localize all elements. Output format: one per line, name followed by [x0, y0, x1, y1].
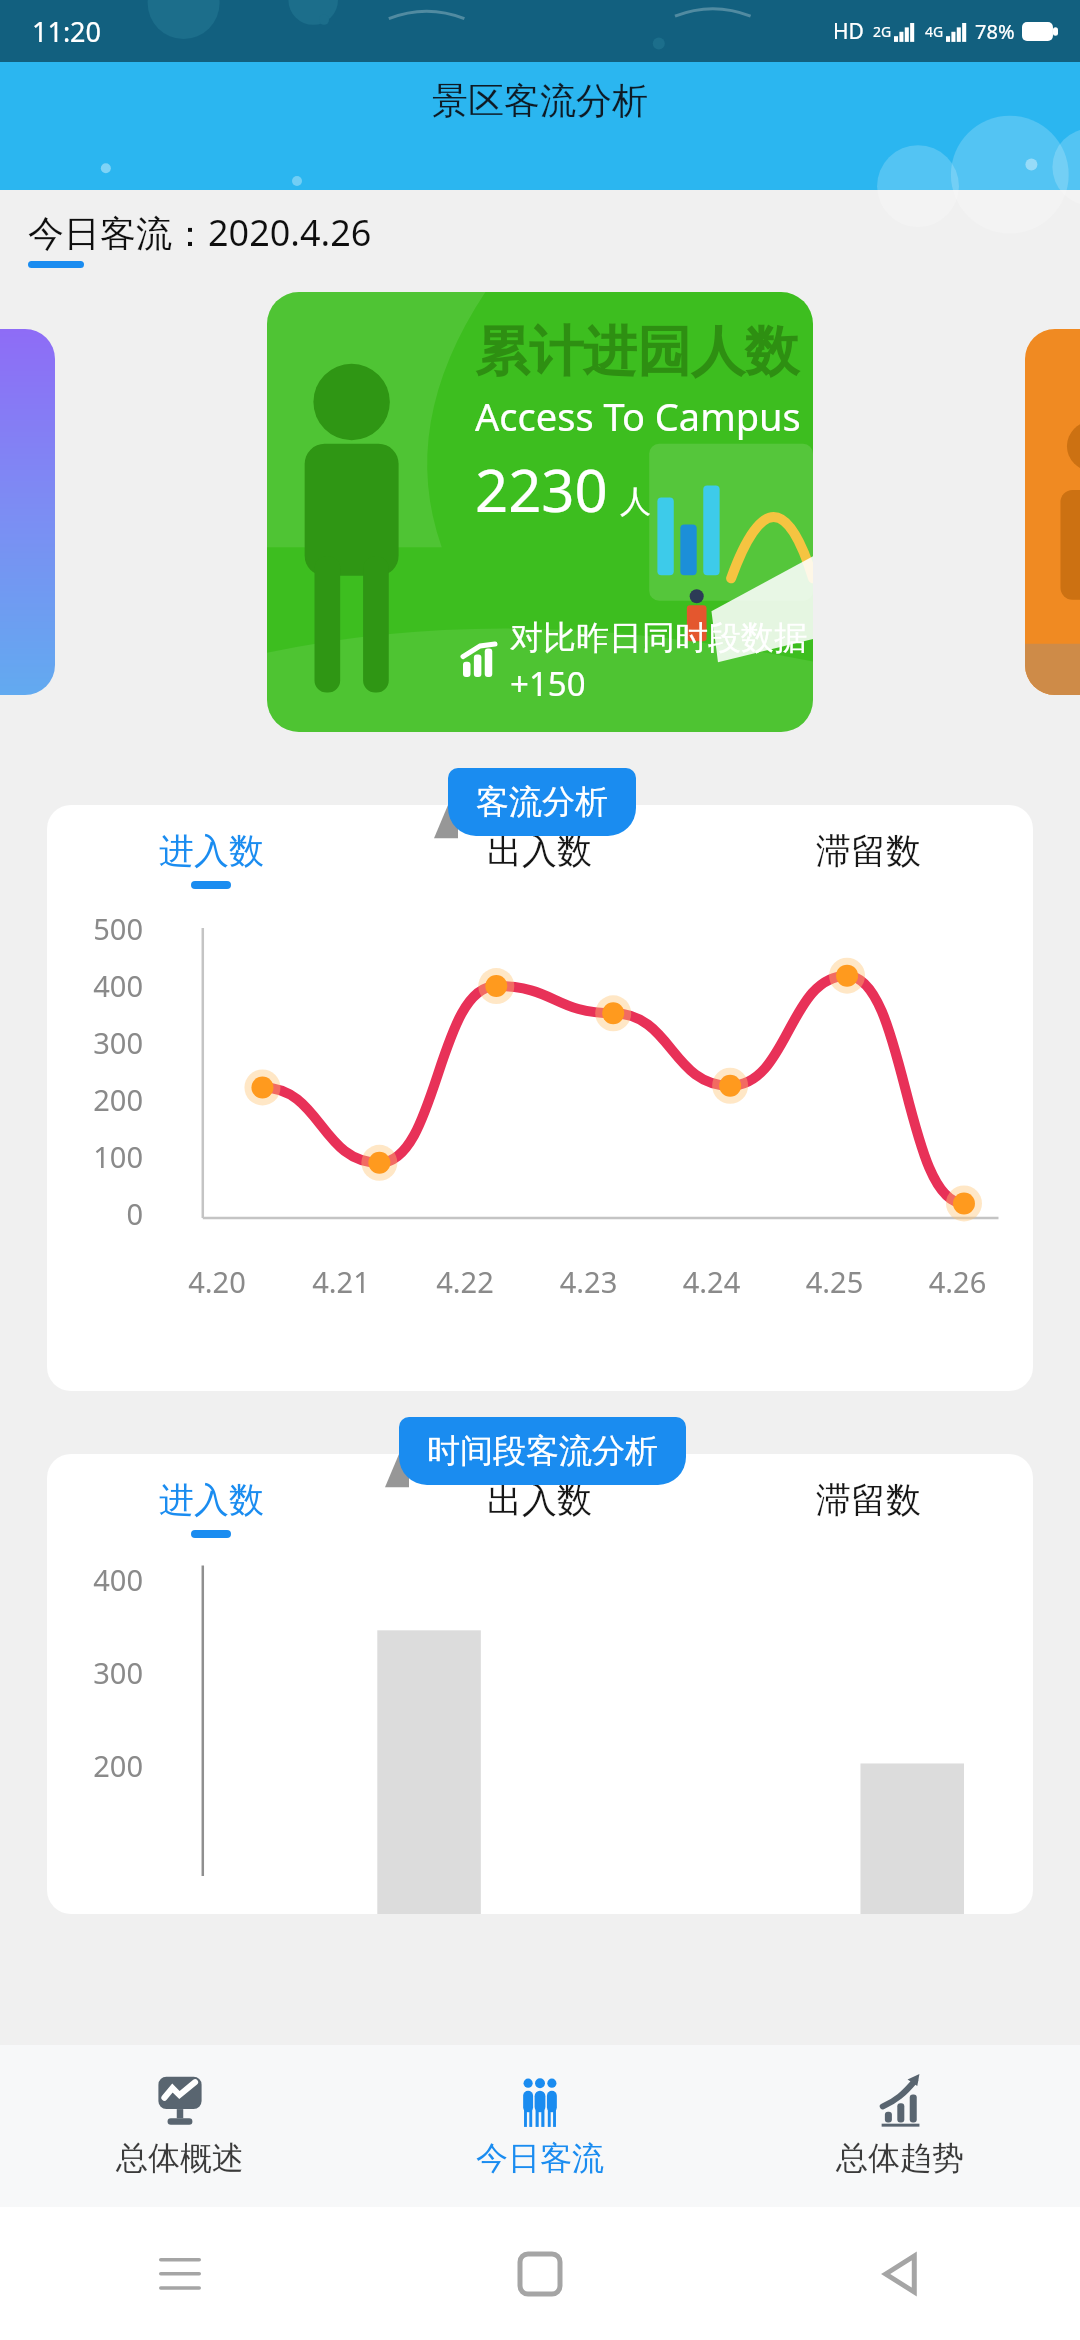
staticText: 200	[77, 1746, 143, 1785]
staticText: 进入数	[159, 1478, 264, 1522]
staticText: HD	[833, 17, 864, 46]
staticText: 4.26	[896, 1262, 1019, 1301]
button[interactable]: Back	[720, 2207, 1080, 2340]
staticText: 客流分析	[476, 781, 608, 823]
staticText: 4G	[925, 22, 944, 41]
staticText: 200	[77, 1080, 143, 1119]
button[interactable]	[0, 329, 55, 695]
staticText: 总体趋势	[836, 2138, 964, 2178]
staticText: 2230	[475, 450, 608, 529]
staticText: 滞留数	[816, 1478, 921, 1522]
button[interactable]: Home	[360, 2207, 720, 2340]
button[interactable]: 客流分析	[448, 768, 636, 836]
staticText: 4.24	[650, 1262, 773, 1301]
button[interactable]: 滞留数	[704, 1478, 1033, 1538]
staticText: 滞留数	[816, 829, 921, 873]
staticText: 100	[77, 1137, 143, 1176]
button[interactable]: 进入数	[47, 829, 375, 889]
staticText: 今日客流	[476, 2138, 604, 2178]
button[interactable]: 出入数	[375, 829, 704, 889]
staticText: 300	[77, 1653, 143, 1692]
staticText: 4.25	[773, 1262, 896, 1301]
staticText: 景区客流分析	[432, 78, 648, 123]
button[interactable]	[1025, 329, 1080, 695]
staticText: 500	[77, 909, 143, 948]
button[interactable]: 进入数	[47, 805, 1033, 1391]
staticText: 4.23	[527, 1262, 650, 1301]
staticText: 总体概述	[116, 2138, 244, 2178]
button[interactable]: 时间段客流分析	[399, 1417, 686, 1485]
staticText: 4.21	[279, 1262, 403, 1301]
staticText: 出入数	[487, 829, 592, 873]
staticText: 今日客流：2020.4.26	[28, 208, 372, 257]
staticText: 4.20	[155, 1262, 279, 1301]
button[interactable]: 进入数	[47, 1478, 375, 1538]
button[interactable]: 累计进园人数	[267, 292, 813, 732]
staticText: 对比昨日同时段数据 +150	[510, 614, 813, 706]
button[interactable]: 进入数	[47, 1454, 1033, 1914]
button[interactable]: 总体趋势	[720, 2045, 1080, 2207]
staticText: 300	[77, 1023, 143, 1062]
staticText: 时间段客流分析	[427, 1430, 658, 1472]
staticText: 0	[77, 1194, 143, 1233]
staticText: 400	[77, 966, 143, 1005]
staticText: 78%	[975, 18, 1015, 45]
staticText: 400	[77, 1560, 143, 1599]
button[interactable]: Recent apps	[0, 2207, 360, 2340]
staticText: 累计进园人数	[475, 318, 799, 386]
button[interactable]: 滞留数	[704, 829, 1033, 889]
staticText: 4.22	[403, 1262, 527, 1301]
staticText: 11:20	[32, 13, 102, 50]
staticText: 出入数	[487, 1478, 592, 1522]
staticText: 人	[620, 482, 651, 521]
button[interactable]: 总体概述	[0, 2045, 360, 2207]
staticText: 进入数	[159, 829, 264, 873]
button[interactable]: 今日客流	[360, 2045, 720, 2207]
staticText: Access To Campus	[475, 390, 801, 442]
staticText: 2G	[873, 22, 892, 41]
button[interactable]: 出入数	[375, 1478, 704, 1538]
